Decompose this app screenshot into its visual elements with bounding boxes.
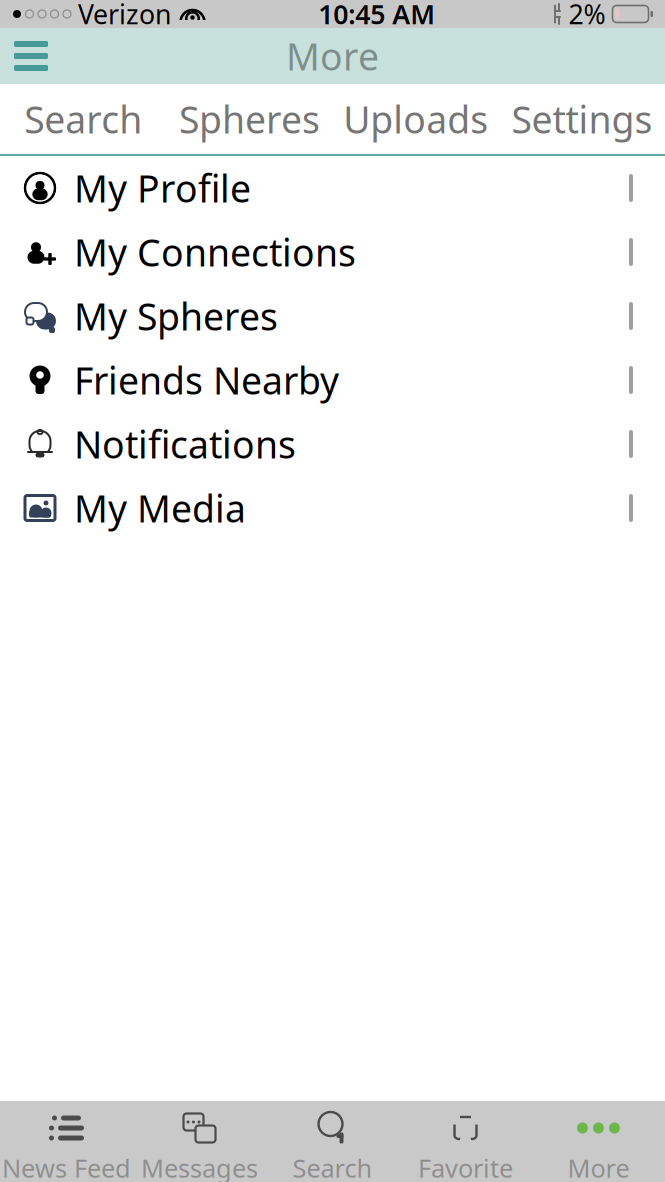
button[interactable]: Menu [0, 28, 62, 84]
button[interactable]: Favorite [399, 1107, 532, 1182]
button[interactable]: Friends Nearby [0, 348, 665, 412]
button[interactable]: My Connections [0, 220, 665, 284]
staticText: Favorite [418, 1151, 513, 1182]
button[interactable]: More [532, 1107, 665, 1182]
staticText: News Feed [2, 1151, 131, 1182]
staticText: Verizon [78, 0, 171, 32]
button[interactable]: Spheres [166, 84, 332, 154]
staticText: My Media [74, 483, 246, 533]
button[interactable]: My Spheres [0, 284, 665, 348]
staticText: Uploads [343, 94, 488, 144]
staticText: 2% [568, 0, 605, 32]
staticText: 10:45 AM [318, 0, 435, 32]
staticText: Search [292, 1151, 372, 1182]
button[interactable]: News Feed [0, 1107, 133, 1182]
staticText: My Connections [74, 227, 356, 277]
staticText: My Profile [74, 163, 251, 213]
button[interactable]: Search [0, 84, 166, 154]
staticText: More [286, 31, 379, 81]
staticText: Notifications [74, 419, 296, 469]
staticText: More [567, 1151, 629, 1182]
staticText: Settings [511, 94, 652, 144]
staticText: Messages [141, 1151, 258, 1182]
staticText: Spheres [179, 94, 320, 144]
staticText: Search [24, 94, 142, 144]
button[interactable]: Settings [499, 84, 665, 154]
staticText: Friends Nearby [74, 355, 339, 405]
button[interactable]: My Media [0, 476, 665, 540]
button[interactable]: Search [266, 1107, 399, 1182]
button[interactable]: Messages [133, 1107, 266, 1182]
button[interactable]: My Profile [0, 156, 665, 220]
button[interactable]: Notifications [0, 412, 665, 476]
button[interactable]: Uploads [332, 84, 499, 154]
staticText: My Spheres [74, 291, 278, 341]
